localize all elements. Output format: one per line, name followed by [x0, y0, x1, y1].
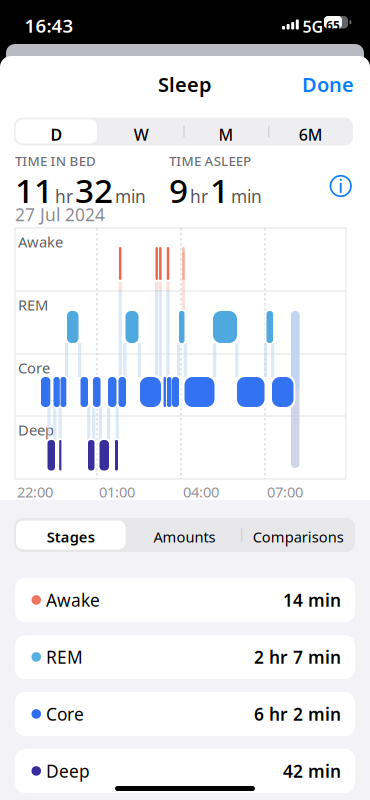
- staticText: min: [231, 185, 262, 208]
- staticText: Awake: [18, 232, 63, 251]
- staticText: 5G: [302, 16, 323, 37]
- button[interactable]: REM: [15, 635, 355, 679]
- staticText: Done: [302, 71, 354, 98]
- staticText: M: [218, 124, 233, 145]
- staticText: REM: [18, 295, 48, 314]
- staticText: 1: [210, 168, 229, 212]
- button[interactable]: M: [183, 124, 268, 145]
- button[interactable]: Awake: [15, 578, 355, 622]
- staticText: 22:00: [17, 482, 53, 501]
- staticText: Comparisons: [253, 527, 344, 546]
- button[interactable]: Amounts: [128, 527, 241, 546]
- staticText: 11: [15, 168, 53, 212]
- button[interactable]: Core: [15, 692, 355, 736]
- staticText: hr: [55, 185, 73, 208]
- button[interactable]: Stages: [14, 527, 128, 546]
- staticText: hr: [190, 185, 208, 208]
- staticText: Deep: [18, 420, 54, 439]
- staticText: 65: [326, 17, 340, 33]
- staticText: min: [115, 185, 146, 208]
- staticText: REM: [46, 645, 83, 668]
- staticText: 2 hr 7 min: [254, 645, 341, 668]
- staticText: TIME ASLEEP: [169, 152, 251, 170]
- button[interactable]: D: [14, 124, 99, 145]
- staticText: TIME IN BED: [15, 152, 96, 170]
- staticText: W: [134, 124, 149, 145]
- button[interactable]: Comparisons: [241, 527, 355, 546]
- staticText: 16:43: [24, 13, 73, 38]
- staticText: Stages: [47, 527, 95, 546]
- staticText: Deep: [46, 759, 90, 782]
- staticText: Awake: [46, 588, 100, 611]
- button[interactable]: Info: [330, 174, 351, 197]
- staticText: 04:00: [183, 482, 219, 501]
- staticText: Amounts: [153, 527, 215, 546]
- staticText: 6 hr 2 min: [254, 702, 341, 725]
- staticText: 42 min: [283, 759, 341, 782]
- staticText: 07:00: [267, 482, 303, 501]
- staticText: Sleep: [158, 71, 212, 98]
- button[interactable]: W: [99, 124, 184, 145]
- staticText: 9: [169, 168, 188, 212]
- staticText: Core: [46, 702, 84, 725]
- staticText: i: [338, 174, 343, 197]
- staticText: 01:00: [99, 482, 135, 501]
- staticText: 6M: [299, 124, 323, 145]
- button[interactable]: 6M: [268, 124, 353, 145]
- staticText: 32: [75, 168, 113, 212]
- staticText: D: [50, 124, 62, 145]
- button[interactable]: Deep: [15, 749, 355, 793]
- staticText: 14 min: [283, 588, 341, 611]
- button[interactable]: Done: [274, 71, 354, 98]
- staticText: Core: [18, 358, 50, 377]
- staticText: 27 Jul 2024: [15, 203, 105, 226]
